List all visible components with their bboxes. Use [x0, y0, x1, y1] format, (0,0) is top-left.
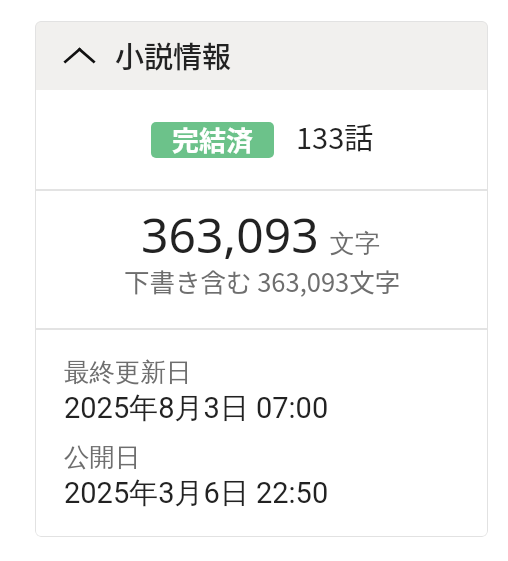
- staticText: 2025年8月3日 07:00: [64, 390, 329, 427]
- button[interactable]: 完結済: [151, 122, 274, 158]
- staticText: 公開日: [64, 441, 141, 473]
- staticText: 文字: [330, 228, 380, 259]
- staticText: 下書き含む 363,093文字: [124, 262, 401, 299]
- staticText: 133話: [296, 115, 374, 157]
- staticText: 完結済: [172, 122, 253, 156]
- staticText: 最終更新日: [64, 356, 192, 388]
- staticText: 363,093: [141, 202, 319, 267]
- staticText: 小説情報: [115, 34, 232, 76]
- other: 折りたたむ: [64, 48, 95, 63]
- staticText: 2025年3月6日 22:50: [64, 475, 329, 512]
- button[interactable]: 折りたたむ: [35, 21, 488, 90]
